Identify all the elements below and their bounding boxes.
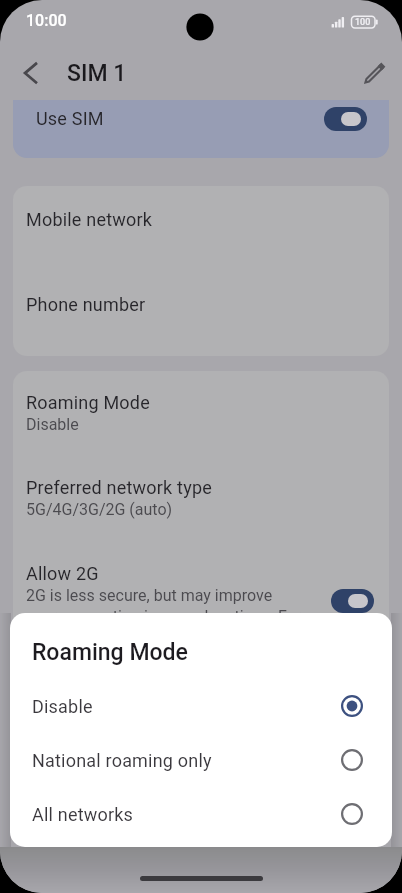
staticText: 10:00 [26,11,67,30]
staticText: Use SIM [36,108,104,129]
staticText: Roaming Mode [32,639,188,666]
staticText: Mobile network [26,209,153,230]
staticText: Roaming Mode [26,392,150,413]
staticText: Phone number [26,294,146,315]
button[interactable]: Preferred network type [13,456,389,541]
button[interactable]: Toggle [324,107,367,131]
button[interactable]: Navigate up [9,51,53,95]
staticText: Allow 2G [26,563,99,584]
staticText: National roaming only [32,750,340,771]
button[interactable]: Roaming Mode [13,371,389,456]
button[interactable]: Rename SIM [353,51,397,95]
button[interactable]: Disable [10,679,392,733]
staticText: 5G/4G/3G/2G (auto) [26,500,173,519]
button[interactable]: Use SIM [13,100,389,158]
button[interactable]: Phone number [13,271,389,356]
staticText: SIM 1 [67,60,127,87]
staticText: All networks [32,804,340,825]
button[interactable]: Toggle [331,589,374,613]
staticText: Preferred network type [26,477,212,498]
button[interactable]: Allow 2G [13,541,389,636]
button[interactable]: All networks [10,787,392,841]
button[interactable]: National roaming only [10,733,392,787]
staticText: 100 [355,17,371,28]
staticText: Disable [26,415,79,434]
staticText: Disable [32,696,340,717]
staticText: 2G is less secure, but may improve your … [26,586,309,636]
button[interactable]: Mobile network [13,186,389,271]
